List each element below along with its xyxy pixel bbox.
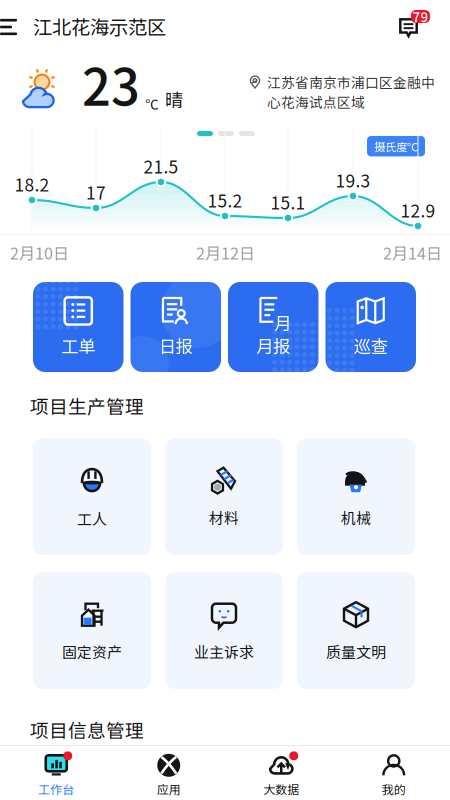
staticText: 2月10日	[10, 241, 69, 264]
staticText: 21.5	[143, 153, 178, 179]
button[interactable]: 业主诉求	[165, 572, 283, 689]
staticText: ℃	[145, 94, 158, 113]
button[interactable]: 材料	[165, 438, 283, 555]
staticText: 固定资产	[62, 641, 122, 662]
staticText: 我的	[382, 780, 406, 798]
button[interactable]: 巡查	[325, 282, 416, 372]
button[interactable]: 月	[228, 282, 318, 372]
button[interactable]: 固定资产	[33, 572, 151, 689]
button[interactable]: 应用	[112, 746, 225, 800]
button[interactable]: 大数据	[225, 746, 337, 800]
staticText: 工作台	[38, 780, 74, 798]
staticText: 摄氏度℃	[374, 138, 418, 154]
staticText: 18.2	[14, 171, 49, 197]
staticText: 23	[82, 47, 140, 120]
staticText: 巡查	[354, 333, 388, 358]
staticText: 大数据	[263, 780, 299, 798]
button[interactable]: 我的	[337, 746, 450, 800]
staticText: 日报	[159, 333, 193, 358]
button[interactable]: 工人	[33, 438, 151, 555]
staticText: 项目信息管理	[30, 716, 144, 743]
staticText: 应用	[157, 780, 181, 798]
staticText: 15.1	[270, 189, 305, 215]
staticText: 机械	[341, 507, 371, 528]
button[interactable]: 机械	[297, 438, 415, 555]
staticText: 项目生产管理	[30, 392, 144, 419]
button[interactable]: 工单	[33, 282, 123, 372]
staticText: 12.9	[400, 197, 435, 223]
staticText: 工人	[77, 508, 107, 529]
staticText: 17	[86, 179, 106, 205]
staticText: 江北花海示范区	[33, 12, 166, 40]
staticText: 月报	[256, 333, 290, 358]
button[interactable]: 工作台	[0, 746, 112, 800]
staticText: 质量文明	[326, 641, 386, 662]
staticText: 79	[412, 7, 428, 26]
staticText: 15.2	[207, 187, 242, 213]
button[interactable]: 消息	[398, 8, 434, 40]
staticText: 业主诉求	[194, 641, 254, 662]
staticText: 月	[274, 310, 291, 335]
staticText: 晴	[165, 86, 183, 112]
staticText: 2月14日	[383, 241, 442, 264]
button[interactable]: 质量文明	[297, 572, 415, 689]
staticText: 19.3	[335, 167, 370, 193]
staticText: 江苏省南京市浦口区金融中 心花海试点区域	[267, 72, 435, 112]
button[interactable]: 日报	[130, 282, 221, 372]
button[interactable]: 菜单	[0, 11, 31, 43]
staticText: 2月12日	[196, 241, 255, 264]
staticText: 工单	[61, 333, 95, 358]
staticText: 材料	[209, 507, 239, 528]
